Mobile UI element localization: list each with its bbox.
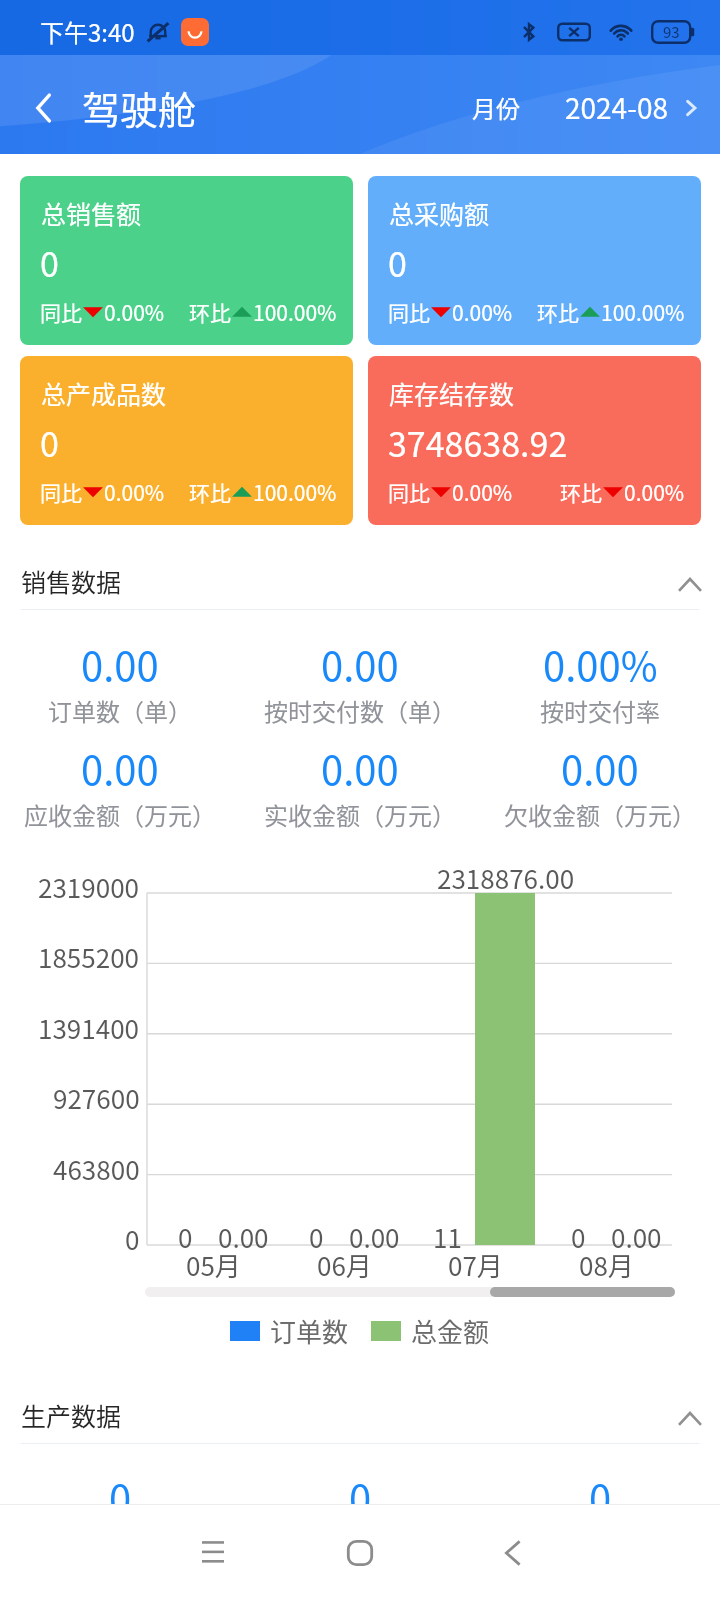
staticText: 0.00 — [81, 635, 159, 693]
staticText: 0.00 — [349, 1218, 400, 1256]
staticText: 应收金额（万元） — [24, 797, 216, 832]
staticText: 1855200 — [38, 938, 140, 976]
staticText: 按时交付数（单） — [264, 693, 456, 728]
staticText: 销售数据 — [21, 563, 122, 599]
staticText: 463800 — [53, 1150, 140, 1188]
staticText: 订单数（单） — [48, 693, 192, 728]
staticText: 总产成品数 — [41, 375, 167, 411]
staticText: 0.00% — [452, 297, 513, 327]
staticText: 100.00% — [253, 477, 337, 507]
staticText: 927600 — [53, 1079, 140, 1117]
button[interactable]: Recents — [140, 1505, 286, 1600]
button[interactable]: 0.00 — [240, 635, 480, 728]
button[interactable]: 0.00 — [480, 739, 720, 832]
button[interactable]: 0.00 — [0, 739, 240, 832]
staticText: 0 — [349, 1468, 372, 1504]
staticText: 0.00 — [321, 635, 399, 693]
button[interactable]: 总采购额 — [368, 176, 701, 345]
button[interactable]: Back — [433, 1505, 580, 1600]
staticText: 0.00 — [81, 739, 159, 797]
button[interactable]: 月份 — [472, 87, 705, 128]
staticText: 0.00 — [561, 739, 639, 797]
staticText: 100.00% — [601, 297, 685, 327]
staticText: 0.00% — [543, 635, 658, 693]
staticText: 100.00% — [253, 297, 337, 327]
staticText: 欠收金额（万元） — [504, 797, 696, 832]
staticText: 3748638.92 — [388, 418, 568, 467]
staticText: 按时交付率 — [540, 693, 660, 728]
staticText: 环比 — [537, 297, 579, 327]
staticText: 0 — [178, 1218, 193, 1256]
staticText: 环比 — [189, 477, 231, 507]
staticText: 08月 — [579, 1246, 634, 1284]
staticText: 同比 — [388, 297, 430, 327]
button[interactable]: 总产成品数 — [20, 356, 353, 525]
staticText: 生产数据 — [21, 1397, 122, 1433]
staticText: 总采购额 — [389, 195, 490, 231]
staticText: 93 — [663, 21, 680, 43]
staticText: 总销售额 — [41, 195, 142, 231]
staticText: 库存结存数 — [389, 375, 515, 411]
staticText: 驾驶舱 — [82, 80, 197, 135]
button[interactable]: 0.00% — [480, 635, 720, 728]
staticText: 0 — [589, 1468, 612, 1504]
staticText: 环比 — [189, 297, 231, 327]
staticText: 同比 — [40, 297, 82, 327]
staticText: 1391400 — [38, 1009, 140, 1047]
staticText: 11 — [433, 1218, 462, 1256]
staticText: 0 — [125, 1220, 140, 1258]
staticText: 07月 — [448, 1246, 503, 1284]
button[interactable]: 库存结存数 — [368, 356, 701, 525]
staticText: 0.00% — [104, 477, 165, 507]
staticText: 2024-08 — [565, 87, 668, 128]
staticText: 实收金额（万元） — [264, 797, 456, 832]
staticText: 2318876.00 — [437, 859, 575, 897]
button[interactable]: 销售数据 — [0, 553, 720, 609]
staticText: 06月 — [317, 1246, 372, 1284]
button[interactable]: 总销售额 — [20, 176, 353, 345]
staticText: 0 — [40, 238, 59, 287]
staticText: 0.00 — [321, 739, 399, 797]
staticText: 0.00 — [611, 1218, 662, 1256]
staticText: 0 — [309, 1218, 324, 1256]
staticText: 同比 — [388, 477, 430, 507]
staticText: 2319000 — [38, 868, 140, 906]
button[interactable]: 生产数据 — [0, 1387, 720, 1443]
staticText: 环比 — [560, 477, 602, 507]
staticText: 0.00% — [452, 477, 513, 507]
staticText: 月份 — [472, 90, 520, 125]
staticText: 订单数 — [270, 1312, 349, 1350]
button[interactable]: Home — [286, 1505, 433, 1600]
staticText: 0 — [388, 238, 407, 287]
button[interactable]: 0.00 — [240, 739, 480, 832]
staticText: 0.00% — [624, 477, 685, 507]
staticText: 05月 — [186, 1246, 241, 1284]
button[interactable]: 0.00 — [0, 635, 240, 728]
staticText: 0.00% — [104, 297, 165, 327]
staticText: 0.00 — [218, 1218, 269, 1256]
button[interactable]: 返回 — [26, 89, 64, 127]
staticText: 同比 — [40, 477, 82, 507]
staticText: 总金额 — [411, 1312, 490, 1350]
staticText: 0 — [571, 1218, 586, 1256]
staticText: 下午3:40 — [40, 14, 135, 49]
staticText: 0 — [40, 418, 59, 467]
staticText: 0 — [109, 1468, 132, 1504]
